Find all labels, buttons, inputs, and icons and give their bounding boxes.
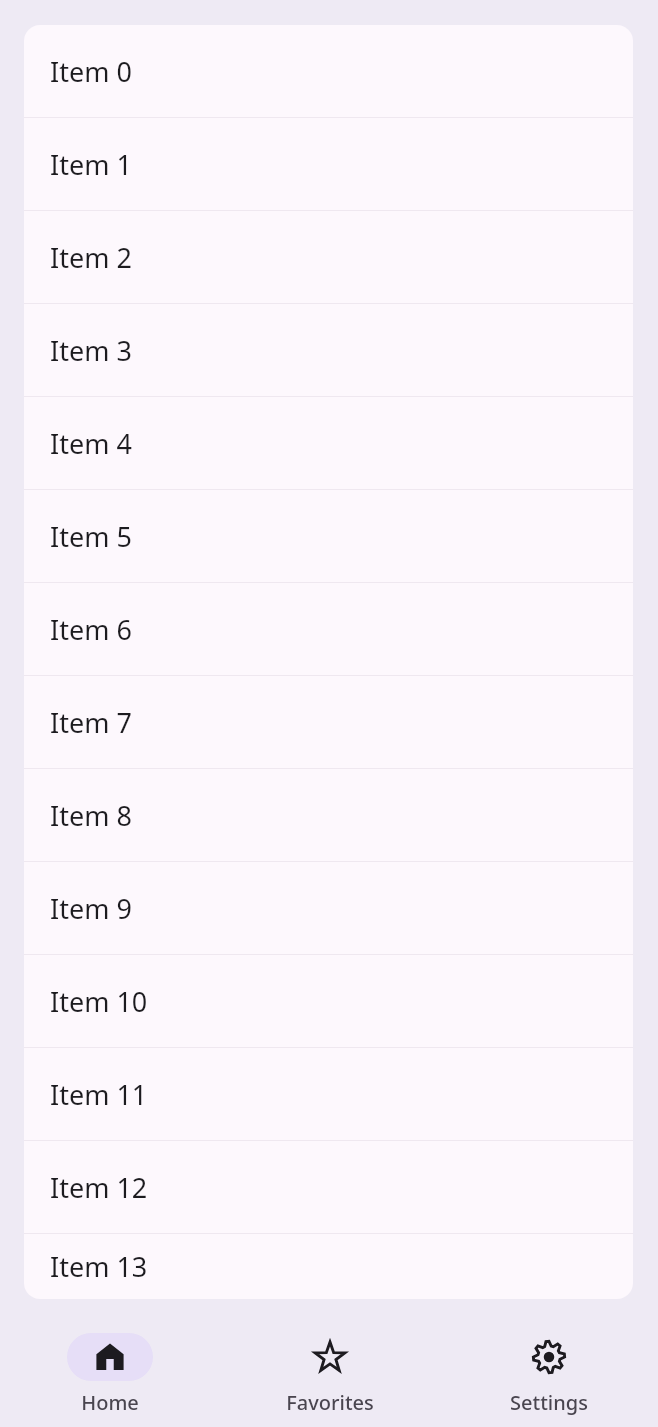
button[interactable]: Home [0, 1299, 220, 1427]
staticText: Item 11 [50, 1076, 148, 1113]
staticText: Item 8 [50, 797, 132, 834]
staticText: Item 6 [50, 611, 132, 648]
staticText: Item 0 [50, 53, 132, 90]
staticText: Item 13 [50, 1248, 148, 1285]
staticText: Favorites [286, 1389, 374, 1416]
staticText: Item 9 [50, 890, 132, 927]
button[interactable]: Item 1 [24, 118, 633, 210]
button[interactable]: Item 4 [24, 397, 633, 489]
staticText: Item 3 [50, 332, 132, 369]
staticText: Settings [510, 1389, 588, 1416]
button[interactable]: Item 12 [24, 1141, 633, 1233]
button[interactable]: Item 9 [24, 862, 633, 954]
staticText: Item 4 [50, 425, 132, 462]
button[interactable]: Item 13 [24, 1234, 633, 1299]
button[interactable]: Item 0 [24, 25, 633, 117]
staticText: Item 12 [50, 1169, 148, 1206]
staticText: Item 1 [50, 146, 132, 183]
button[interactable]: Item 8 [24, 769, 633, 861]
staticText: Item 7 [50, 704, 132, 741]
button[interactable]: Item 11 [24, 1048, 633, 1140]
button[interactable]: Item 2 [24, 211, 633, 303]
button[interactable]: Item 3 [24, 304, 633, 396]
staticText: Home [81, 1389, 139, 1416]
staticText: Item 10 [50, 983, 148, 1020]
button[interactable]: Favorites [220, 1299, 439, 1427]
button[interactable]: Item 5 [24, 490, 633, 582]
staticText: Item 2 [50, 239, 132, 276]
button[interactable]: Settings [439, 1299, 658, 1427]
button[interactable]: Item 10 [24, 955, 633, 1047]
staticText: Item 5 [50, 518, 132, 555]
button[interactable]: Item 7 [24, 676, 633, 768]
button[interactable]: Item 6 [24, 583, 633, 675]
